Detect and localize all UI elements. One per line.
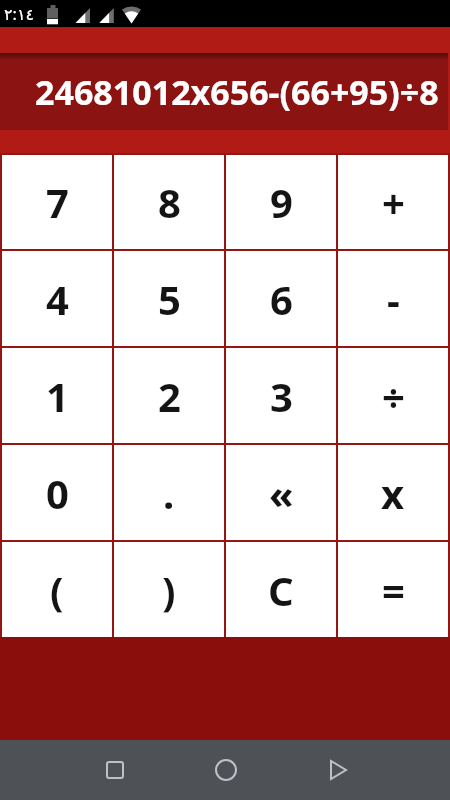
- button[interactable]: C: [226, 542, 336, 637]
- staticText: 8: [158, 175, 181, 229]
- staticText: 5: [158, 272, 181, 326]
- button[interactable]: [202, 746, 250, 794]
- staticText: 3: [270, 369, 293, 423]
- button[interactable]: 7: [2, 155, 112, 249]
- staticText: .: [163, 466, 175, 520]
- button[interactable]: 5: [114, 251, 224, 346]
- staticText: x: [381, 466, 405, 520]
- button[interactable]: 1: [2, 348, 112, 443]
- button[interactable]: x: [338, 445, 448, 540]
- button[interactable]: +: [338, 155, 448, 249]
- button[interactable]: [91, 746, 139, 794]
- staticText: 7: [46, 175, 69, 229]
- button[interactable]: 8: [114, 155, 224, 249]
- button[interactable]: .: [114, 445, 224, 540]
- staticText: 0: [46, 466, 69, 520]
- button[interactable]: -: [338, 251, 448, 346]
- button[interactable]: [314, 746, 362, 794]
- button[interactable]: (: [2, 542, 112, 637]
- button[interactable]: ): [114, 542, 224, 637]
- button[interactable]: 9: [226, 155, 336, 249]
- button[interactable]: ÷: [338, 348, 448, 443]
- staticText: ٢:١٤: [4, 3, 35, 25]
- staticText: 6: [270, 272, 293, 326]
- staticText: 4: [46, 272, 69, 326]
- button[interactable]: 2: [114, 348, 224, 443]
- staticText: «: [269, 466, 294, 520]
- staticText: -: [387, 272, 400, 326]
- staticText: ÷: [382, 369, 405, 423]
- button[interactable]: «: [226, 445, 336, 540]
- button[interactable]: =: [338, 542, 448, 637]
- staticText: 1: [46, 369, 69, 423]
- staticText: ): [162, 563, 176, 617]
- button[interactable]: 6: [226, 251, 336, 346]
- staticText: 2: [158, 369, 181, 423]
- staticText: 24681012x656-(66+95)÷8: [35, 69, 439, 115]
- staticText: =: [382, 563, 405, 617]
- button[interactable]: 3: [226, 348, 336, 443]
- button[interactable]: 4: [2, 251, 112, 346]
- button[interactable]: 0: [2, 445, 112, 540]
- staticText: 9: [270, 175, 293, 229]
- staticText: (: [50, 563, 64, 617]
- staticText: +: [382, 175, 405, 229]
- staticText: C: [268, 563, 294, 617]
